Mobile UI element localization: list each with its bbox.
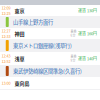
staticText: 12:52 (1, 58, 10, 64)
staticText: 乗換 (70, 29, 76, 34)
staticText: 浅草 (14, 55, 24, 62)
button[interactable]: 12:09 (0, 5, 100, 16)
staticText: 乗換 (70, 54, 76, 59)
button[interactable]: 東京メトロ銀座線(浅草行) (0, 39, 100, 52)
staticText: 東武伊勢崎線区間準急(久喜行) (13, 67, 82, 75)
staticText: 東京メトロ銀座線(浅草行) (13, 42, 72, 49)
staticText: 山手線上野方面行 (13, 18, 53, 26)
button[interactable]: 12:43 (0, 52, 100, 65)
staticText: 12:27 (1, 28, 10, 34)
staticText: 運賃 160円 (78, 31, 97, 36)
staticText: 神田 (14, 30, 24, 37)
staticText: 12:33 (1, 33, 10, 39)
button[interactable]: 12:27 (0, 28, 100, 39)
staticText: 6分 (70, 33, 75, 38)
staticText: 東京 (14, 7, 24, 14)
staticText: 12:25 (1, 10, 10, 16)
button[interactable]: 山手線上野方面行 (0, 16, 100, 28)
staticText: 運賃 140円 (78, 56, 97, 61)
staticText: 9分 (70, 58, 75, 63)
staticText: 13:00 (1, 80, 10, 86)
staticText: 運賃 130円 (78, 8, 97, 13)
button[interactable]: 東武伊勢崎線区間準急(久喜行) (0, 65, 100, 77)
staticText: 12:09 (1, 5, 10, 11)
staticText: 12:43 (1, 53, 10, 59)
button[interactable]: 13:00 (0, 77, 100, 89)
staticText: 東向島 (14, 79, 29, 87)
